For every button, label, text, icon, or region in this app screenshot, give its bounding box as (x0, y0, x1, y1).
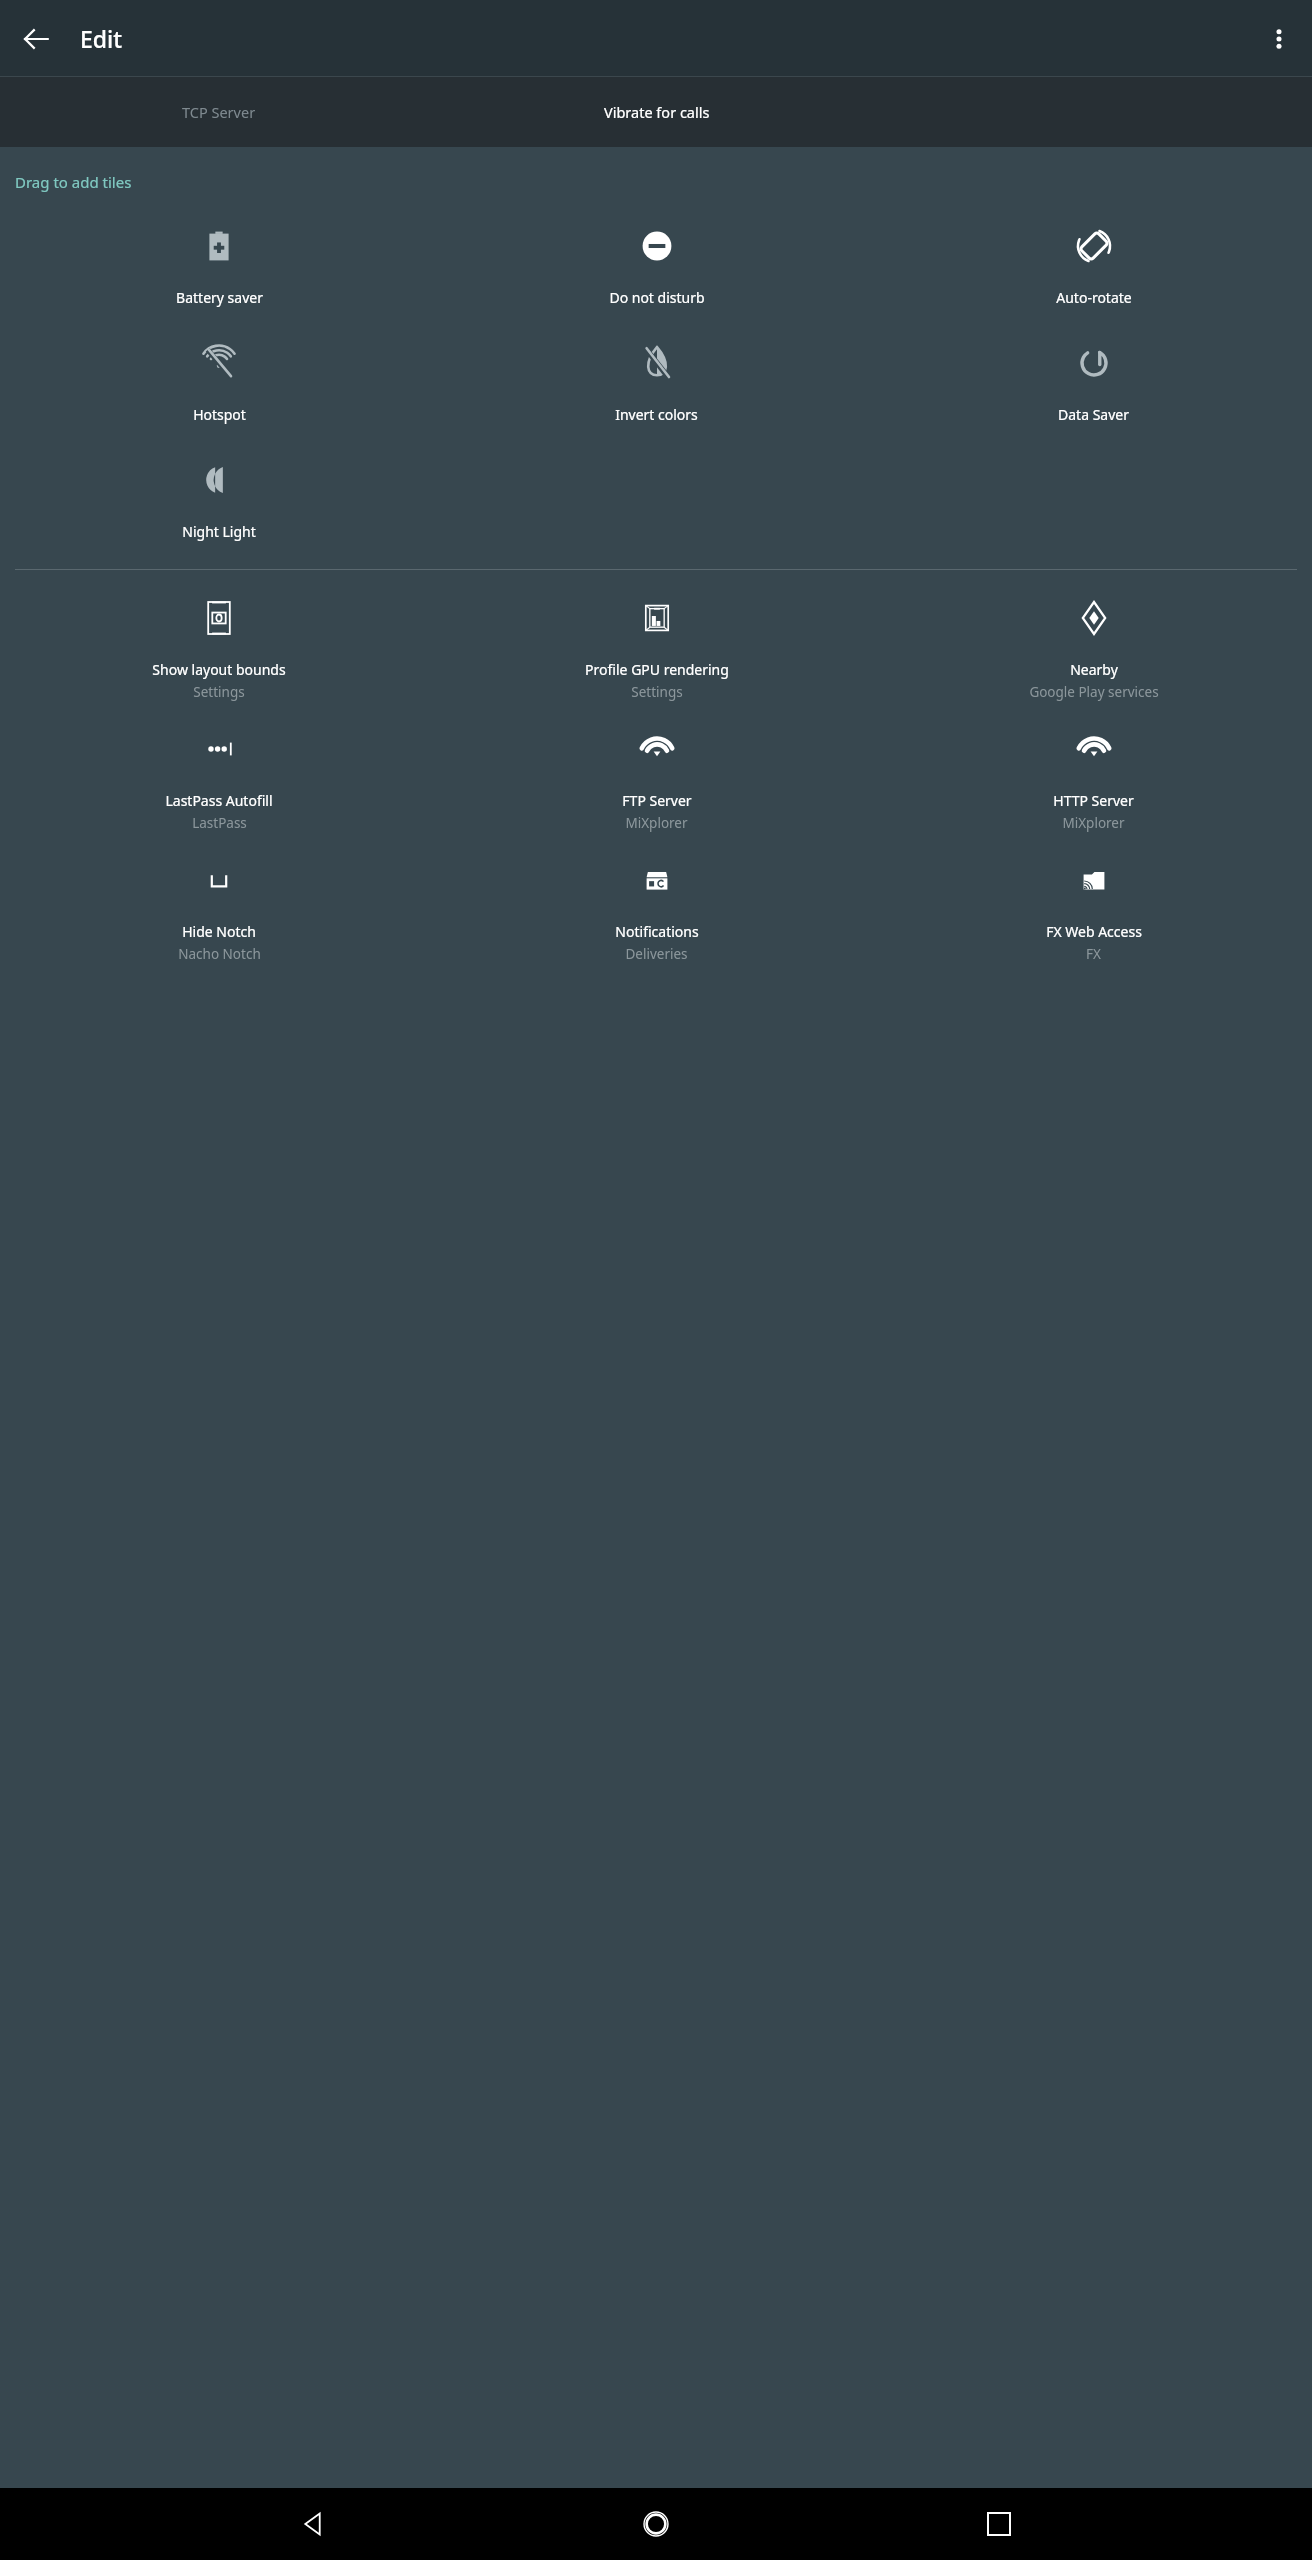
button[interactable]: Nearby (875, 592, 1312, 707)
button[interactable]: More options (1255, 15, 1303, 63)
button[interactable]: Do not disturb (438, 220, 875, 313)
staticText: Data Saver (1058, 405, 1129, 424)
staticText: Hotspot (193, 405, 246, 424)
staticText: LastPass (192, 814, 247, 832)
button[interactable]: Hide Notch (0, 854, 438, 969)
button[interactable]: Show layout bounds (0, 592, 438, 707)
staticText: Profile GPU rendering (585, 660, 729, 679)
staticText: Edit (80, 23, 123, 54)
button[interactable]: Recents (969, 2494, 1029, 2554)
staticText: Nacho Notch (178, 945, 261, 963)
button[interactable]: Night Light (0, 454, 438, 547)
button[interactable]: Auto-rotate (875, 220, 1312, 313)
staticText: FX (1086, 945, 1101, 963)
button[interactable]: FX Web Access (875, 854, 1312, 969)
button[interactable]: Home (626, 2494, 686, 2554)
button[interactable]: Battery saver (0, 220, 438, 313)
staticText: Settings (631, 683, 683, 701)
staticText: Night Light (182, 522, 256, 541)
staticText: Settings (193, 683, 245, 701)
button[interactable]: HTTP Server (875, 723, 1312, 838)
staticText: HTTP Server (1053, 791, 1134, 810)
staticText: Drag to add tiles (15, 172, 132, 192)
staticText: Do not disturb (609, 288, 705, 307)
staticText: Notifications (615, 922, 699, 941)
button[interactable]: LastPass Autofill (0, 723, 438, 838)
staticText: Hide Notch (182, 922, 256, 941)
staticText: Auto-rotate (1056, 288, 1132, 307)
button[interactable]: Invert colors (438, 337, 875, 430)
staticText: FTP Server (622, 791, 692, 810)
button[interactable]: Back (283, 2494, 343, 2554)
button[interactable]: Back (12, 15, 60, 63)
staticText: TCP Server (182, 102, 256, 122)
staticText: Show layout bounds (152, 660, 286, 679)
button[interactable]: Hotspot (0, 337, 438, 430)
staticText: Invert colors (615, 405, 698, 424)
staticText: Deliveries (625, 945, 688, 963)
button[interactable]: FTP Server (438, 723, 875, 838)
staticText: FX Web Access (1046, 922, 1142, 941)
staticText: Google Play services (1029, 683, 1159, 701)
staticText: Battery saver (176, 288, 263, 307)
button[interactable]: Profile GPU rendering (438, 592, 875, 707)
button[interactable]: Notifications (438, 854, 875, 969)
button[interactable]: Data Saver (875, 337, 1312, 430)
staticText: Vibrate for calls (604, 102, 710, 122)
staticText: MiXplorer (625, 814, 688, 832)
staticText: LastPass Autofill (165, 791, 273, 810)
staticText: Nearby (1070, 660, 1118, 679)
staticText: MiXplorer (1062, 814, 1125, 832)
